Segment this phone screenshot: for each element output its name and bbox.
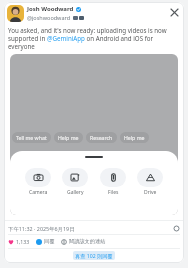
- staticText: 閱讀該文的連結: [69, 238, 106, 245]
- staticText: 1,133: [16, 238, 30, 245]
- staticText: Camera: [29, 189, 48, 196]
- button[interactable]: Files: [99, 168, 127, 196]
- button[interactable]: Drive: [136, 168, 164, 196]
- button[interactable]: Gallery: [61, 168, 89, 196]
- staticText: @GeminiApp: [47, 34, 85, 42]
- button[interactable]: Tell me what: [12, 132, 51, 143]
- staticText: 再查 102 則回覆: [75, 252, 113, 259]
- staticText: Research: [90, 134, 113, 141]
- button[interactable]: 再查 102 則回覆: [73, 251, 115, 260]
- button[interactable]: 1,133: [8, 238, 30, 245]
- staticText: 下午11:32 · 2025年6月19日: [8, 225, 75, 232]
- staticText: Drive: [144, 189, 157, 196]
- button[interactable]: Help me: [54, 132, 83, 143]
- button[interactable]: 閱讀該文的連結: [61, 238, 106, 245]
- staticText: Files: [108, 189, 119, 196]
- staticText: You asked, and it's now ready: uploading…: [8, 26, 167, 34]
- button[interactable]: Analytics: [172, 224, 180, 232]
- button[interactable]: Close: [167, 5, 181, 19]
- button[interactable]: Help me: [120, 132, 149, 143]
- staticText: Josh Woodward: [27, 5, 74, 13]
- button[interactable]: Camera: [24, 168, 52, 196]
- staticText: supported in: [8, 34, 47, 42]
- staticText: Help me: [124, 134, 145, 141]
- staticText: Help me: [58, 134, 79, 141]
- button[interactable]: Research: [86, 132, 117, 143]
- button[interactable]: Video: [10, 54, 178, 215]
- staticText: Tell me what: [16, 134, 47, 141]
- button[interactable]: 回覆: [36, 238, 55, 245]
- button[interactable]: Profile photo: [7, 5, 24, 22]
- staticText: 回覆: [44, 238, 55, 245]
- staticText: on Android and iOS for: [85, 34, 154, 42]
- staticText: everyone: [8, 42, 35, 50]
- staticText: Gallery: [67, 189, 84, 196]
- staticText: @joshwoodward: [27, 14, 71, 21]
